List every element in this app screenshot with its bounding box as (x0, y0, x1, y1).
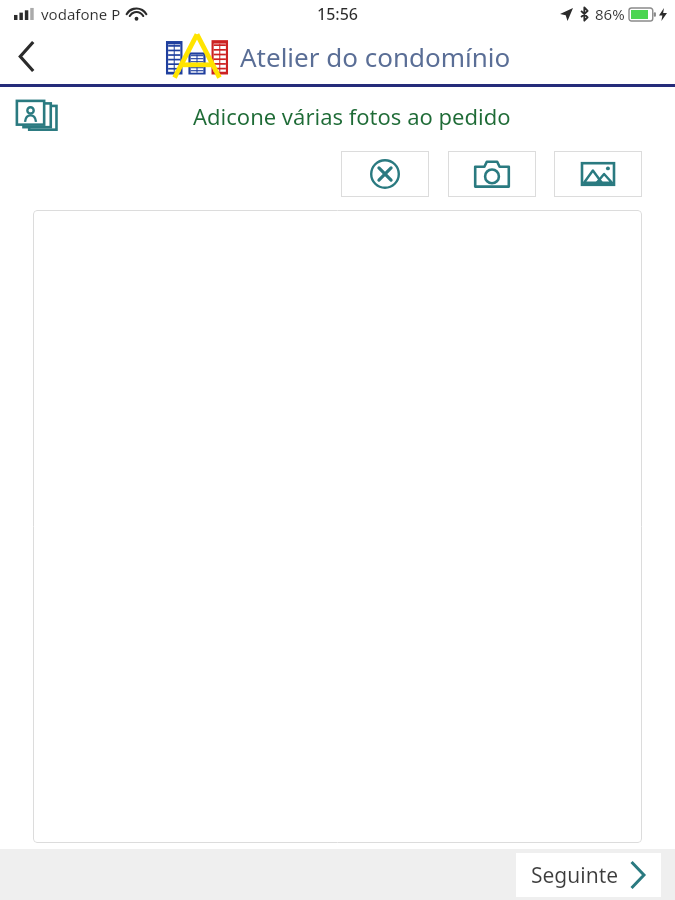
button[interactable]: Back (3, 32, 51, 80)
staticText: Seguinte (531, 861, 619, 890)
staticText: vodafone P (41, 4, 121, 24)
staticText: Adicone várias fotos ao pedido (193, 101, 511, 131)
button[interactable]: Seguinte (516, 853, 661, 897)
staticText: Atelier do condomínio (240, 39, 511, 74)
staticText: 15:56 (317, 3, 358, 25)
button[interactable]: Clear photos (341, 151, 429, 197)
staticText: 86% (595, 4, 625, 24)
button[interactable]: Take photo (448, 151, 536, 197)
button[interactable]: Choose from gallery (554, 151, 642, 197)
